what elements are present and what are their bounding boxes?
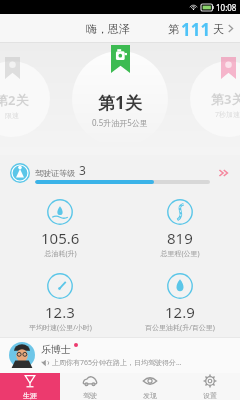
staticText: 发现: [143, 391, 157, 400]
staticText: 上周你有765分钟在路上，日均驾驶得分…: [52, 358, 182, 368]
staticText: 百公里油耗(升/百公里): [145, 323, 215, 333]
staticText: 12.3: [45, 302, 75, 322]
button[interactable]: 乐博士: [0, 337, 240, 373]
staticText: 第: [168, 22, 179, 36]
staticText: 105.6: [41, 228, 80, 248]
staticText: 819: [167, 228, 193, 248]
staticText: 总里程(公里): [160, 249, 200, 259]
button[interactable]: 105.6: [0, 195, 120, 263]
button[interactable]: 12.3: [0, 269, 120, 337]
button[interactable]: 12.9: [120, 269, 240, 337]
button[interactable]: 驾驶证等级: [0, 155, 240, 191]
staticText: 驾驶: [83, 391, 97, 400]
button[interactable]: 第: [162, 14, 240, 43]
staticText: 第2关: [0, 91, 29, 109]
staticText: 7秒加速: [215, 110, 240, 120]
button[interactable]: 发现: [120, 373, 180, 400]
staticText: 驾驶证等级: [35, 168, 75, 178]
staticText: 10:08: [216, 2, 237, 13]
staticText: 天: [213, 22, 224, 36]
staticText: 总油耗(升): [44, 249, 77, 259]
button[interactable]: 819: [120, 195, 240, 263]
staticText: 限速: [5, 111, 19, 120]
button[interactable]: 第3关: [190, 61, 240, 137]
staticText: 嗨，恩泽: [86, 22, 130, 36]
button[interactable]: 第2关: [0, 61, 50, 137]
staticText: 12.9: [165, 302, 195, 322]
button[interactable]: 设置: [180, 373, 240, 400]
staticText: 第1关: [98, 91, 142, 114]
staticText: 111: [181, 18, 211, 39]
staticText: 设置: [203, 391, 217, 400]
button[interactable]: 生涯: [0, 373, 60, 400]
button[interactable]: 驾驶: [60, 373, 120, 400]
button[interactable]: 第1关: [72, 51, 168, 147]
staticText: 第3关: [211, 90, 240, 108]
staticText: 乐博士: [41, 343, 71, 356]
staticText: 平均时速(公里/小时): [29, 323, 92, 333]
staticText: 0.5升油开5公里: [92, 117, 148, 128]
staticText: 3: [79, 162, 86, 178]
staticText: 生涯: [23, 391, 37, 400]
